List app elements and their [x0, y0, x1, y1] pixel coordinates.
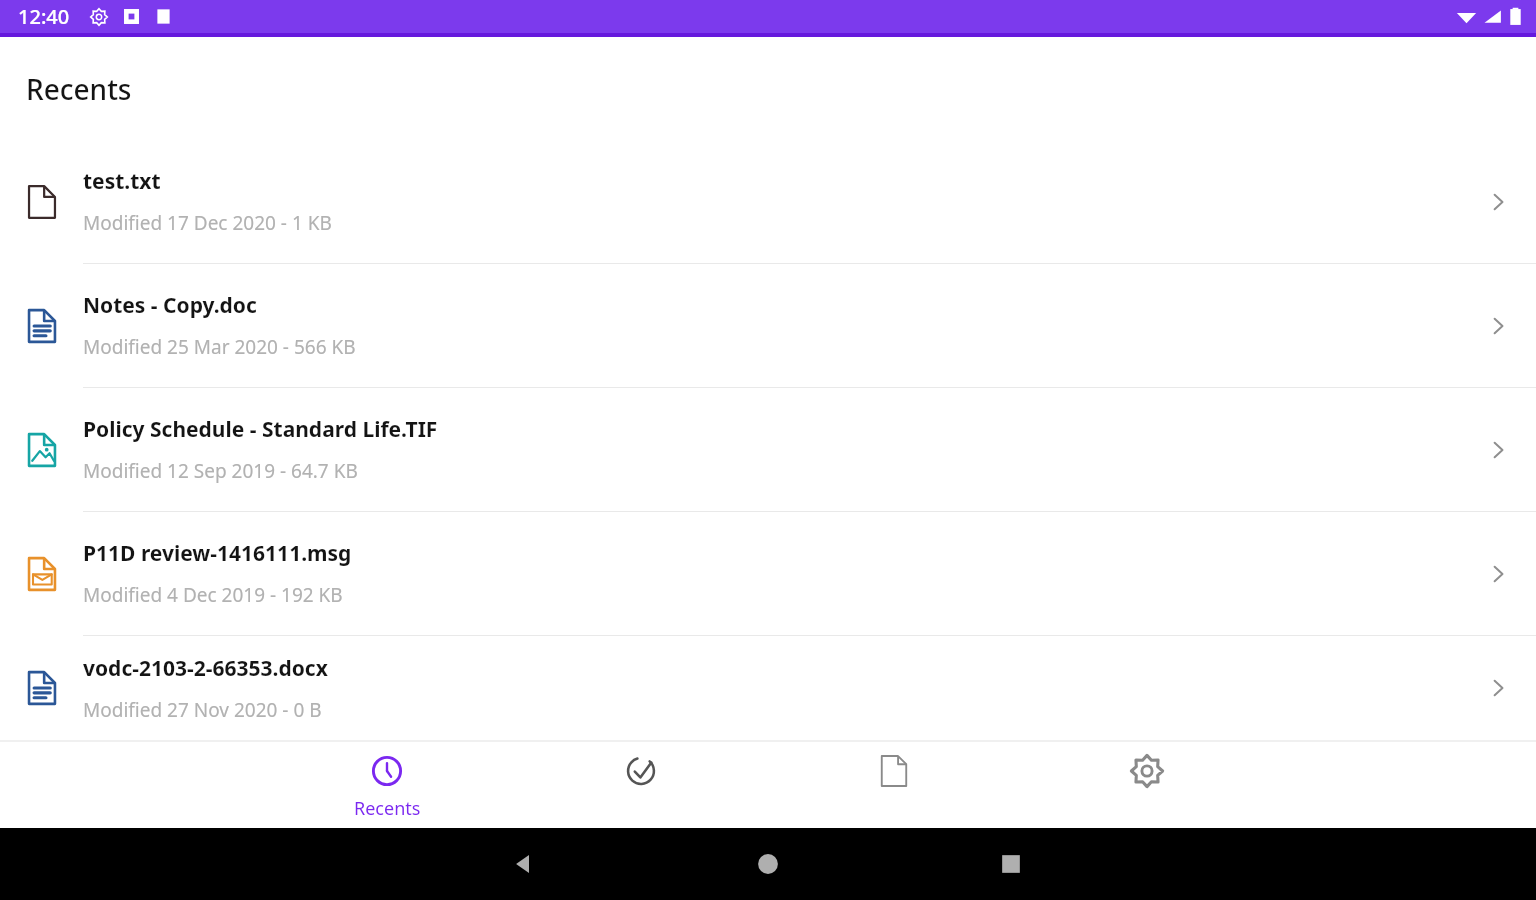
button[interactable]: Notes - Copy.doc	[0, 264, 1536, 387]
button[interactable]: test.txt	[0, 140, 1536, 263]
button[interactable]: Settings	[1088, 742, 1206, 828]
staticText: Notes - Copy.doc	[83, 291, 257, 320]
staticText: Modified 12 Sep 2019 - 64.7 KB	[83, 458, 358, 484]
button[interactable]: Policy Schedule - Standard Life.TIF	[0, 388, 1536, 511]
button[interactable]: Browse files	[835, 742, 953, 828]
button[interactable]: P11D review-1416111.msg	[0, 512, 1536, 635]
staticText: Policy Schedule - Standard Life.TIF	[83, 415, 438, 444]
staticText: Modified 17 Dec 2020 - 1 KB	[83, 210, 332, 236]
staticText: vodc-2103-2-66353.docx	[83, 654, 328, 683]
button[interactable]: Home	[755, 851, 781, 877]
staticText: Modified 4 Dec 2019 - 192 KB	[83, 582, 343, 608]
staticText: test.txt	[83, 167, 161, 196]
button[interactable]: Selected files	[582, 742, 700, 828]
staticText: 12:40	[18, 3, 70, 30]
staticText: Recents	[354, 796, 421, 821]
button[interactable]: vodc-2103-2-66353.docx	[0, 636, 1536, 740]
staticText: Modified 27 Nov 2020 - 0 B	[83, 697, 322, 723]
staticText: Modified 25 Mar 2020 - 566 KB	[83, 334, 356, 360]
button[interactable]: Back	[508, 849, 538, 879]
button[interactable]: Recent apps	[998, 851, 1024, 877]
staticText: P11D review-1416111.msg	[83, 539, 352, 568]
staticText: Recents	[26, 70, 132, 108]
button[interactable]: Recents	[328, 742, 446, 828]
